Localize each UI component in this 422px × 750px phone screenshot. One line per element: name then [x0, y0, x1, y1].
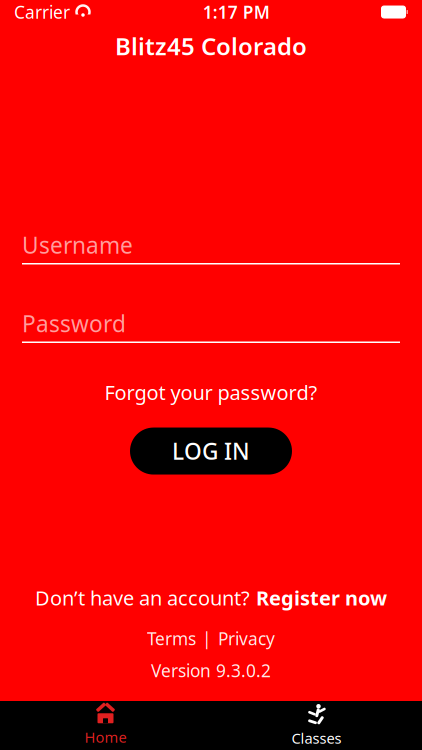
staticText: Register now	[256, 584, 387, 611]
button[interactable]: Terms	[141, 624, 202, 653]
button[interactable]: Forgot your password?	[92, 374, 329, 411]
staticText: |	[202, 627, 212, 650]
button[interactable]: Home	[0, 701, 211, 750]
staticText: Classes	[291, 728, 341, 748]
staticText: Home	[84, 727, 126, 747]
staticText: Forgot your password?	[104, 379, 317, 406]
button[interactable]: LOG IN	[130, 428, 292, 475]
staticText: Carrier	[14, 0, 70, 23]
staticText: Privacy	[218, 627, 275, 650]
button[interactable]: Privacy	[212, 624, 281, 653]
staticText: Username	[22, 230, 133, 260]
staticText: 1:17 PM	[203, 0, 270, 23]
staticText: Password	[22, 308, 126, 338]
staticText: Blitz45 Colorado	[115, 30, 307, 62]
button[interactable]: Don’t have an account?	[35, 580, 387, 615]
staticText: LOG IN	[172, 436, 250, 466]
staticText: Don’t have an account?	[35, 584, 250, 611]
button[interactable]: Classes	[211, 701, 422, 750]
staticText: Terms	[147, 627, 196, 650]
staticText: Version 9.3.0.2	[151, 659, 271, 682]
